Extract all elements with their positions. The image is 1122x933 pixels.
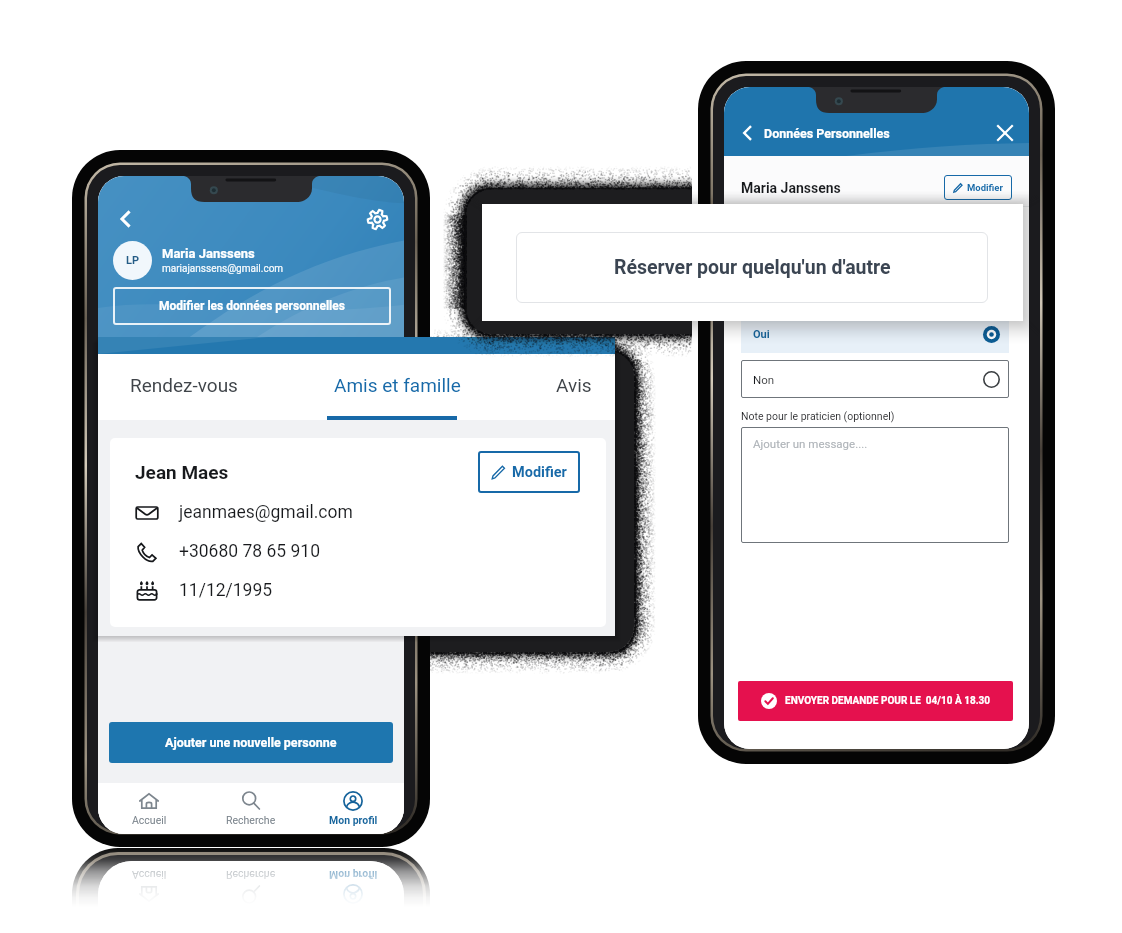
staticText: Avis	[556, 374, 592, 396]
staticText: Ajouter un message....	[753, 437, 868, 450]
staticText: Rendez-vous	[130, 374, 238, 396]
staticText: Modifier	[512, 464, 567, 481]
button[interactable]: Modifier	[478, 451, 580, 493]
staticText: Maria Janssens	[162, 246, 255, 261]
button[interactable]: Non	[741, 360, 1009, 398]
staticText: +30680 78 65 910	[179, 541, 320, 562]
staticText: Note pour le praticien (optionnel)	[741, 410, 895, 422]
staticText: Modifier	[967, 182, 1003, 193]
staticText: Maria Janssens	[741, 180, 841, 196]
staticText: Mon profil	[329, 869, 378, 881]
staticText: Ajouter une nouvelle personne	[165, 735, 337, 750]
button[interactable]: Oui	[741, 315, 1009, 353]
button[interactable]: Recherche	[200, 783, 302, 834]
button[interactable]: Accueil	[98, 861, 200, 912]
button[interactable]: Amis et famille	[334, 354, 461, 416]
staticText: Données Personnelles	[764, 126, 890, 141]
staticText: Amis et famille	[334, 374, 461, 396]
staticText: Recherche	[226, 814, 276, 826]
staticText: ENVOYER DEMANDE POUR LE 04/10 À 18.30	[785, 695, 991, 707]
button[interactable]: Avis	[556, 354, 592, 416]
staticText: jeanmaes@gmail.com	[179, 502, 353, 523]
staticText: Accueil	[132, 869, 167, 881]
button[interactable]: Recherche	[200, 861, 302, 912]
staticText: Recherche	[226, 869, 276, 881]
button[interactable]: Réserver pour quelqu'un d'autre	[516, 232, 988, 303]
button[interactable]: Accueil	[98, 783, 200, 834]
staticText: mariajanssens@gmail.com	[162, 263, 284, 275]
staticText: Jean Maes	[135, 461, 229, 483]
button[interactable]: Settings	[363, 205, 391, 233]
button[interactable]: ENVOYER DEMANDE POUR LE 04/10 À 18.30	[738, 681, 1013, 721]
staticText: Non	[753, 373, 775, 386]
staticText: Accueil	[132, 814, 167, 826]
staticText: Réserver pour quelqu'un d'autre	[614, 256, 891, 279]
button[interactable]: Ajouter un message....	[741, 427, 1009, 543]
staticText: LP	[126, 254, 140, 267]
button[interactable]: Back	[736, 122, 758, 144]
staticText: Modifier les données personnelles	[159, 299, 345, 313]
staticText: 11/12/1995	[179, 580, 273, 601]
button[interactable]: Modifier	[944, 175, 1012, 200]
button[interactable]: Close	[995, 123, 1015, 143]
button[interactable]: Mon profil	[302, 783, 404, 834]
button[interactable]: Ajouter une nouvelle personne	[109, 722, 393, 763]
staticText: Mon profil	[329, 814, 378, 826]
button[interactable]: Back	[111, 205, 139, 233]
button[interactable]: Modifier les données personnelles	[113, 287, 391, 325]
button[interactable]: Rendez-vous	[130, 354, 238, 416]
button[interactable]: Mon profil	[302, 861, 404, 912]
staticText: Oui	[753, 328, 770, 341]
